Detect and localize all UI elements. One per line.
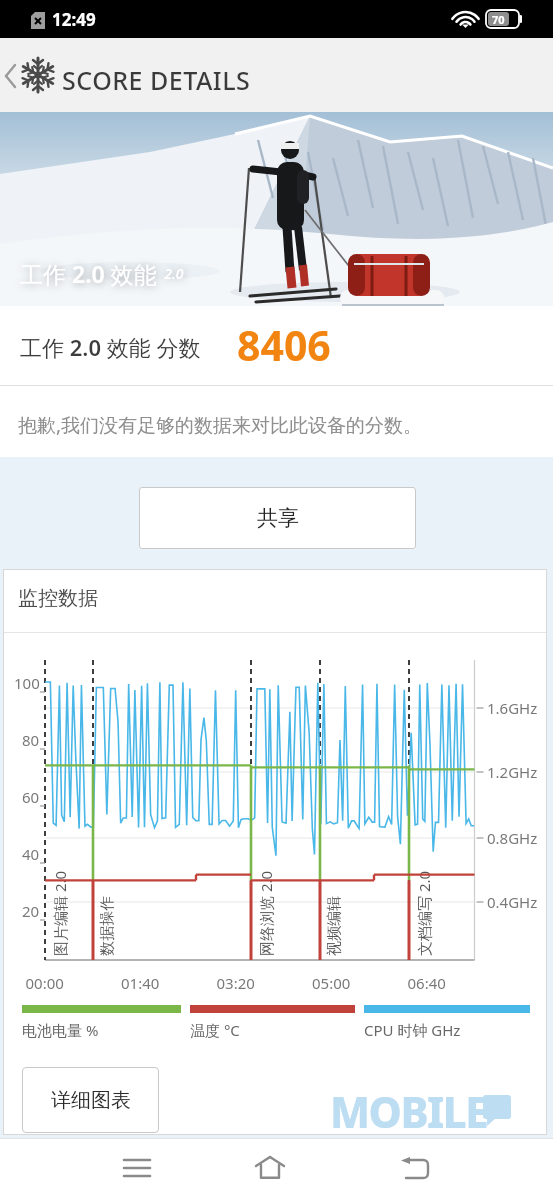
staticText: SCORE DETAILS	[62, 63, 251, 97]
button[interactable]	[390, 1143, 440, 1193]
staticText: 详细图表	[51, 1088, 131, 1113]
staticText: 电池电量 %	[22, 1020, 99, 1040]
staticText: CPU 时钟 GHz	[364, 1020, 461, 1040]
button[interactable]: 共享	[139, 487, 416, 549]
staticText: 8406	[237, 317, 331, 373]
button[interactable]	[112, 1143, 162, 1193]
staticText: 温度 °C	[190, 1020, 240, 1040]
staticText: 70	[492, 12, 505, 27]
staticText: MOBILE	[330, 1083, 488, 1140]
staticText: 监控数据	[18, 586, 98, 611]
button[interactable]	[245, 1143, 295, 1193]
staticText: 共享	[257, 505, 299, 531]
staticText: 工作 2.0 效能 分数	[20, 332, 201, 362]
button[interactable]	[0, 38, 553, 112]
staticText: 2.0	[157, 264, 184, 283]
staticText: 12:49	[52, 8, 96, 31]
button[interactable]: 详细图表	[22, 1067, 159, 1133]
staticText: 工作 2.0 效能	[20, 258, 157, 289]
staticText: 抱歉,我们没有足够的数据来对比此设备的分数。	[18, 412, 423, 438]
